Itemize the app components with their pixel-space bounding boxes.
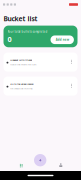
staticText: 0 [8,34,12,44]
staticText: We should be visiting [10,87,32,90]
button[interactable]: Add item [32,152,48,168]
button[interactable]: Add new [50,35,74,44]
button[interactable]: Bucket list [13,158,29,174]
button[interactable]: Hangout with friends [3,53,77,72]
staticText: Hangout with friends [10,59,32,61]
staticText: Your total bullets completed [8,30,48,33]
staticText: Watch the movie we talk [10,63,36,66]
staticText: Go to the grand canyon [10,83,33,85]
button[interactable]: Go to the grand canyon [3,77,77,96]
staticText: Bucket list [3,14,37,23]
button[interactable]: Profile [53,157,69,173]
staticText: Add new [56,38,69,42]
